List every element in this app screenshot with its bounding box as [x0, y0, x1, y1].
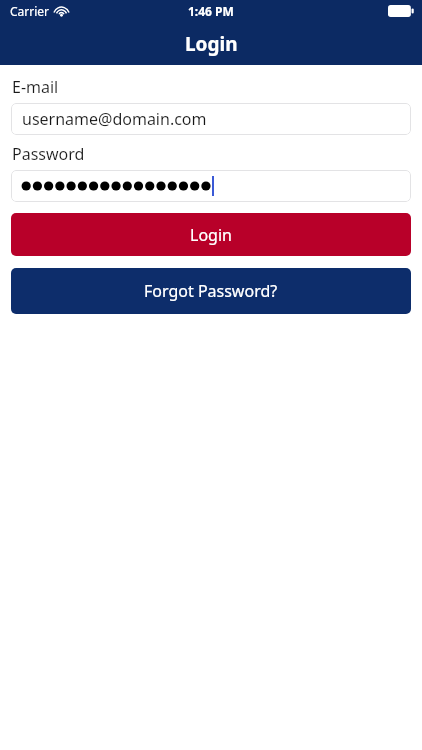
staticText: username@domain.com: [22, 108, 207, 130]
staticText: E-mail: [12, 76, 59, 98]
button[interactable]: Forgot Password?: [11, 268, 411, 314]
staticText: Forgot Password?: [144, 280, 278, 302]
staticText: Carrier: [10, 3, 50, 19]
button[interactable]: username@domain.com: [11, 103, 411, 135]
button[interactable]: Login: [11, 213, 411, 256]
staticText: 1:46 PM: [188, 3, 234, 19]
staticText: Login: [190, 224, 232, 246]
button[interactable]: Password entry: [11, 170, 411, 202]
staticText: Login: [185, 31, 238, 57]
staticText: Password: [12, 143, 85, 165]
